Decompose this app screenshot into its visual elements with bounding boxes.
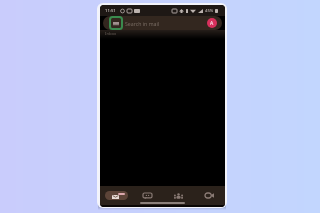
button[interactable]: Account [207, 18, 217, 28]
staticText: Inbox [105, 31, 117, 37]
button[interactable]: Meet [194, 186, 225, 205]
button[interactable]: Chat [132, 186, 163, 205]
staticText: 45% [205, 8, 214, 14]
button[interactable]: Mail [100, 186, 132, 205]
button[interactable]: Open navigation menu [103, 16, 222, 30]
staticText: A [210, 20, 214, 27]
button[interactable]: Spaces [163, 186, 194, 205]
staticText: 11:51 [105, 8, 116, 14]
button[interactable]: Open navigation menu [109, 16, 123, 30]
staticText: Search in mail [125, 20, 160, 27]
